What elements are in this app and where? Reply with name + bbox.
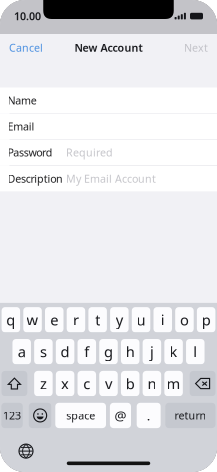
button[interactable]: r bbox=[67, 307, 85, 332]
staticText: Next bbox=[184, 40, 208, 55]
button[interactable]: v bbox=[99, 371, 118, 396]
button[interactable]: e bbox=[45, 307, 63, 332]
button[interactable]: u bbox=[132, 307, 150, 332]
staticText: m bbox=[167, 374, 181, 393]
staticText: . bbox=[147, 407, 151, 424]
button[interactable]: @ bbox=[110, 403, 131, 428]
staticText: 10.00 bbox=[14, 9, 41, 23]
staticText: y bbox=[116, 310, 123, 329]
button[interactable]: m bbox=[164, 371, 183, 396]
staticText: b bbox=[126, 374, 135, 393]
staticText: j bbox=[150, 342, 154, 361]
button[interactable]: y bbox=[110, 307, 129, 332]
staticText: o bbox=[180, 310, 189, 329]
staticText: r bbox=[73, 310, 79, 329]
staticText: l bbox=[193, 342, 197, 361]
button[interactable]: c bbox=[78, 371, 96, 396]
button[interactable]: a bbox=[12, 339, 31, 364]
staticText: s bbox=[40, 342, 47, 361]
button[interactable]: space bbox=[55, 403, 106, 428]
staticText: v bbox=[105, 374, 112, 393]
button[interactable]: 123 bbox=[1, 403, 23, 428]
staticText: d bbox=[61, 342, 70, 361]
staticText: Password bbox=[7, 145, 53, 160]
staticText: Email bbox=[7, 119, 34, 133]
button[interactable]: Cancel bbox=[0, 34, 52, 60]
button[interactable]: j bbox=[143, 339, 161, 364]
staticText: z bbox=[40, 374, 47, 393]
button[interactable]: Description bbox=[0, 166, 217, 191]
staticText: return bbox=[174, 408, 206, 423]
button[interactable]: l bbox=[186, 339, 204, 364]
button[interactable]: g bbox=[99, 339, 118, 364]
staticText: Required bbox=[66, 145, 113, 160]
staticText: g bbox=[104, 342, 113, 361]
button[interactable]: Email bbox=[0, 114, 217, 139]
button[interactable]: n bbox=[143, 371, 161, 396]
staticText: u bbox=[136, 310, 145, 329]
button[interactable]: . bbox=[137, 403, 161, 428]
staticText: t bbox=[95, 310, 100, 329]
staticText: Cancel bbox=[9, 40, 43, 55]
button[interactable]: d bbox=[56, 339, 74, 364]
button[interactable]: z bbox=[34, 371, 53, 396]
button[interactable]: Delete bbox=[190, 371, 215, 396]
button[interactable]: h bbox=[121, 339, 139, 364]
staticText: f bbox=[84, 342, 89, 361]
button[interactable]: p bbox=[197, 307, 215, 332]
button[interactable]: f bbox=[77, 339, 96, 364]
staticText: p bbox=[202, 310, 211, 329]
button[interactable]: i bbox=[153, 307, 172, 332]
staticText: k bbox=[170, 342, 178, 361]
button[interactable]: Name bbox=[0, 87, 217, 113]
button[interactable]: s bbox=[34, 339, 53, 364]
staticText: My Email Account bbox=[66, 171, 156, 186]
staticText: c bbox=[83, 374, 90, 393]
button[interactable]: w bbox=[23, 307, 42, 332]
staticText: a bbox=[18, 342, 26, 361]
staticText: i bbox=[161, 310, 165, 329]
button[interactable]: Next keyboard bbox=[0, 436, 39, 464]
button[interactable]: Password bbox=[0, 140, 217, 165]
button[interactable]: Shift bbox=[1, 371, 27, 396]
button[interactable]: q bbox=[2, 307, 20, 332]
staticText: e bbox=[50, 310, 58, 329]
button[interactable]: k bbox=[164, 339, 183, 364]
staticText: New Account bbox=[74, 40, 142, 55]
staticText: space bbox=[66, 408, 95, 423]
staticText: @ bbox=[114, 407, 126, 424]
staticText: 123 bbox=[3, 408, 21, 423]
button[interactable]: return bbox=[165, 403, 215, 428]
button[interactable]: Emoji bbox=[29, 403, 51, 428]
staticText: n bbox=[147, 374, 156, 393]
button[interactable]: Next bbox=[175, 34, 217, 60]
button[interactable]: x bbox=[56, 371, 74, 396]
staticText: Description bbox=[7, 171, 63, 186]
staticText: Name bbox=[7, 93, 37, 107]
staticText: w bbox=[26, 310, 38, 329]
staticText: h bbox=[126, 342, 135, 361]
button[interactable]: t bbox=[88, 307, 107, 332]
staticText: q bbox=[6, 310, 15, 329]
button[interactable]: o bbox=[175, 307, 194, 332]
button[interactable]: b bbox=[121, 371, 139, 396]
staticText: x bbox=[61, 374, 69, 393]
